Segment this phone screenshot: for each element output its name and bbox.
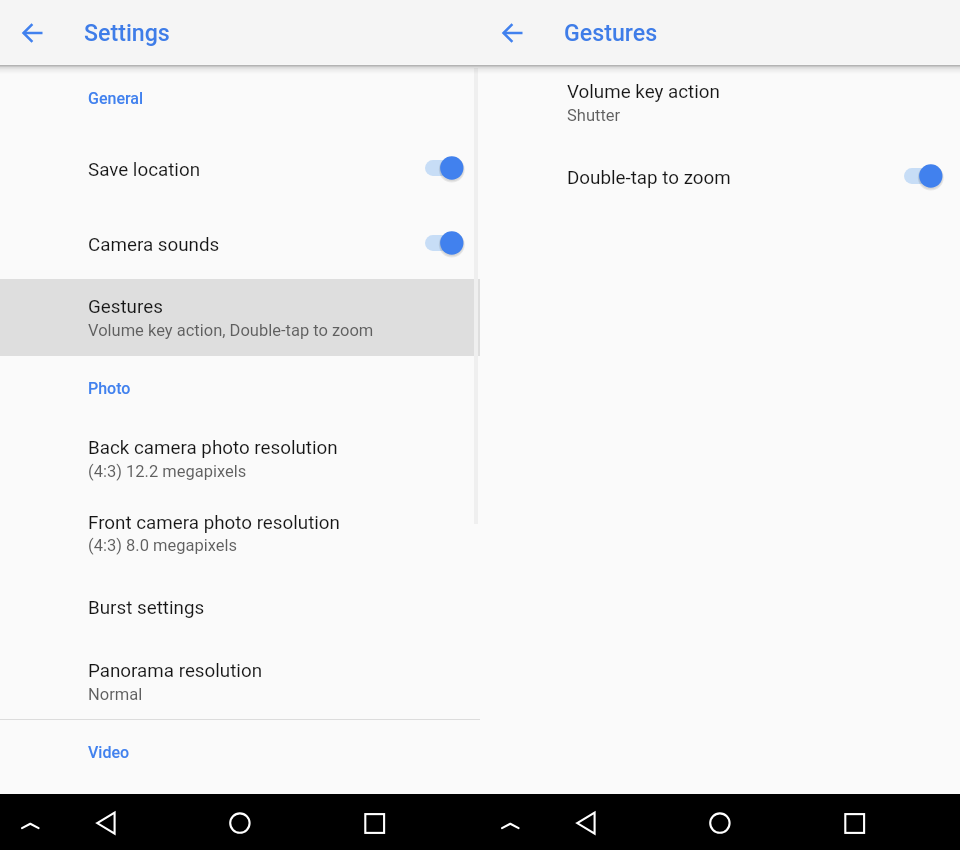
staticText: Camera sounds xyxy=(88,234,220,256)
button[interactable]: Home xyxy=(219,802,259,842)
staticText: Normal xyxy=(88,685,143,704)
staticText: Volume key action, Double-tap to zoom xyxy=(88,321,374,340)
staticText: General xyxy=(88,89,144,108)
staticText: Double-tap to zoom xyxy=(567,167,731,189)
button[interactable]: Back camera photo resolution xyxy=(0,411,480,485)
staticText: Settings xyxy=(84,19,170,46)
staticText: (4:3) 8.0 megapixels xyxy=(88,536,238,555)
staticText: Gestures xyxy=(88,296,163,318)
staticText: Gestures xyxy=(564,19,658,46)
staticText: Volume key action xyxy=(567,81,720,103)
button[interactable]: Volume key action xyxy=(480,68,960,140)
staticText: (4:3) 12.2 megapixels xyxy=(88,462,247,481)
staticText: Burst settings xyxy=(88,597,205,619)
button[interactable]: Hide keyboard xyxy=(489,802,529,842)
button[interactable]: Panorama resolution xyxy=(0,634,480,708)
staticText: Front camera photo resolution xyxy=(88,512,340,534)
staticText: Shutter xyxy=(567,106,621,125)
button[interactable]: Front camera photo resolution xyxy=(0,485,480,559)
button[interactable]: Navigate up xyxy=(499,19,527,47)
button[interactable]: Navigate up xyxy=(19,19,47,47)
button[interactable]: Double-tap to zoom xyxy=(480,140,960,214)
button[interactable]: Gestures xyxy=(0,279,480,356)
staticText: Photo xyxy=(88,379,131,398)
button[interactable]: Hide keyboard xyxy=(9,802,49,842)
button[interactable]: Recent apps xyxy=(833,802,873,842)
staticText: Save location xyxy=(88,159,201,181)
staticText: Panorama resolution xyxy=(88,660,263,682)
staticText: Back camera photo resolution xyxy=(88,437,338,459)
button[interactable]: Home xyxy=(699,802,739,842)
button[interactable]: Back xyxy=(85,802,125,842)
button[interactable]: Save location xyxy=(0,131,480,207)
button[interactable]: Back xyxy=(565,802,605,842)
staticText: Video xyxy=(88,743,130,762)
button[interactable]: Burst settings xyxy=(0,572,480,634)
button[interactable]: Recent apps xyxy=(353,802,393,842)
button[interactable]: Camera sounds xyxy=(0,207,480,279)
